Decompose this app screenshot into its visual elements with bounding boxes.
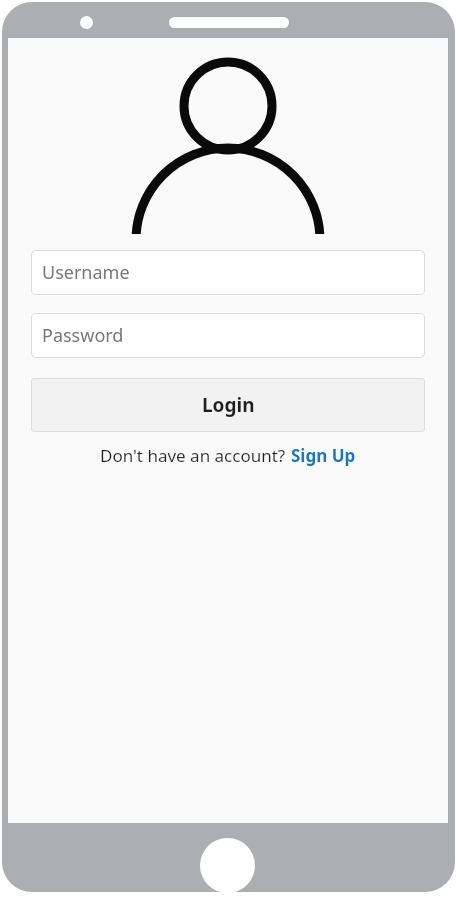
- staticText: Login: [202, 392, 255, 418]
- staticText: Username: [42, 260, 130, 285]
- staticText: Sign Up: [291, 444, 356, 467]
- button[interactable]: Username: [31, 250, 425, 295]
- button[interactable]: Password: [31, 313, 425, 358]
- staticText: Don't have an account?: [100, 444, 290, 467]
- button[interactable]: Home: [200, 838, 255, 893]
- button[interactable]: Sign Up: [290, 444, 357, 467]
- button[interactable]: Login: [31, 378, 425, 432]
- staticText: Password: [42, 323, 124, 348]
